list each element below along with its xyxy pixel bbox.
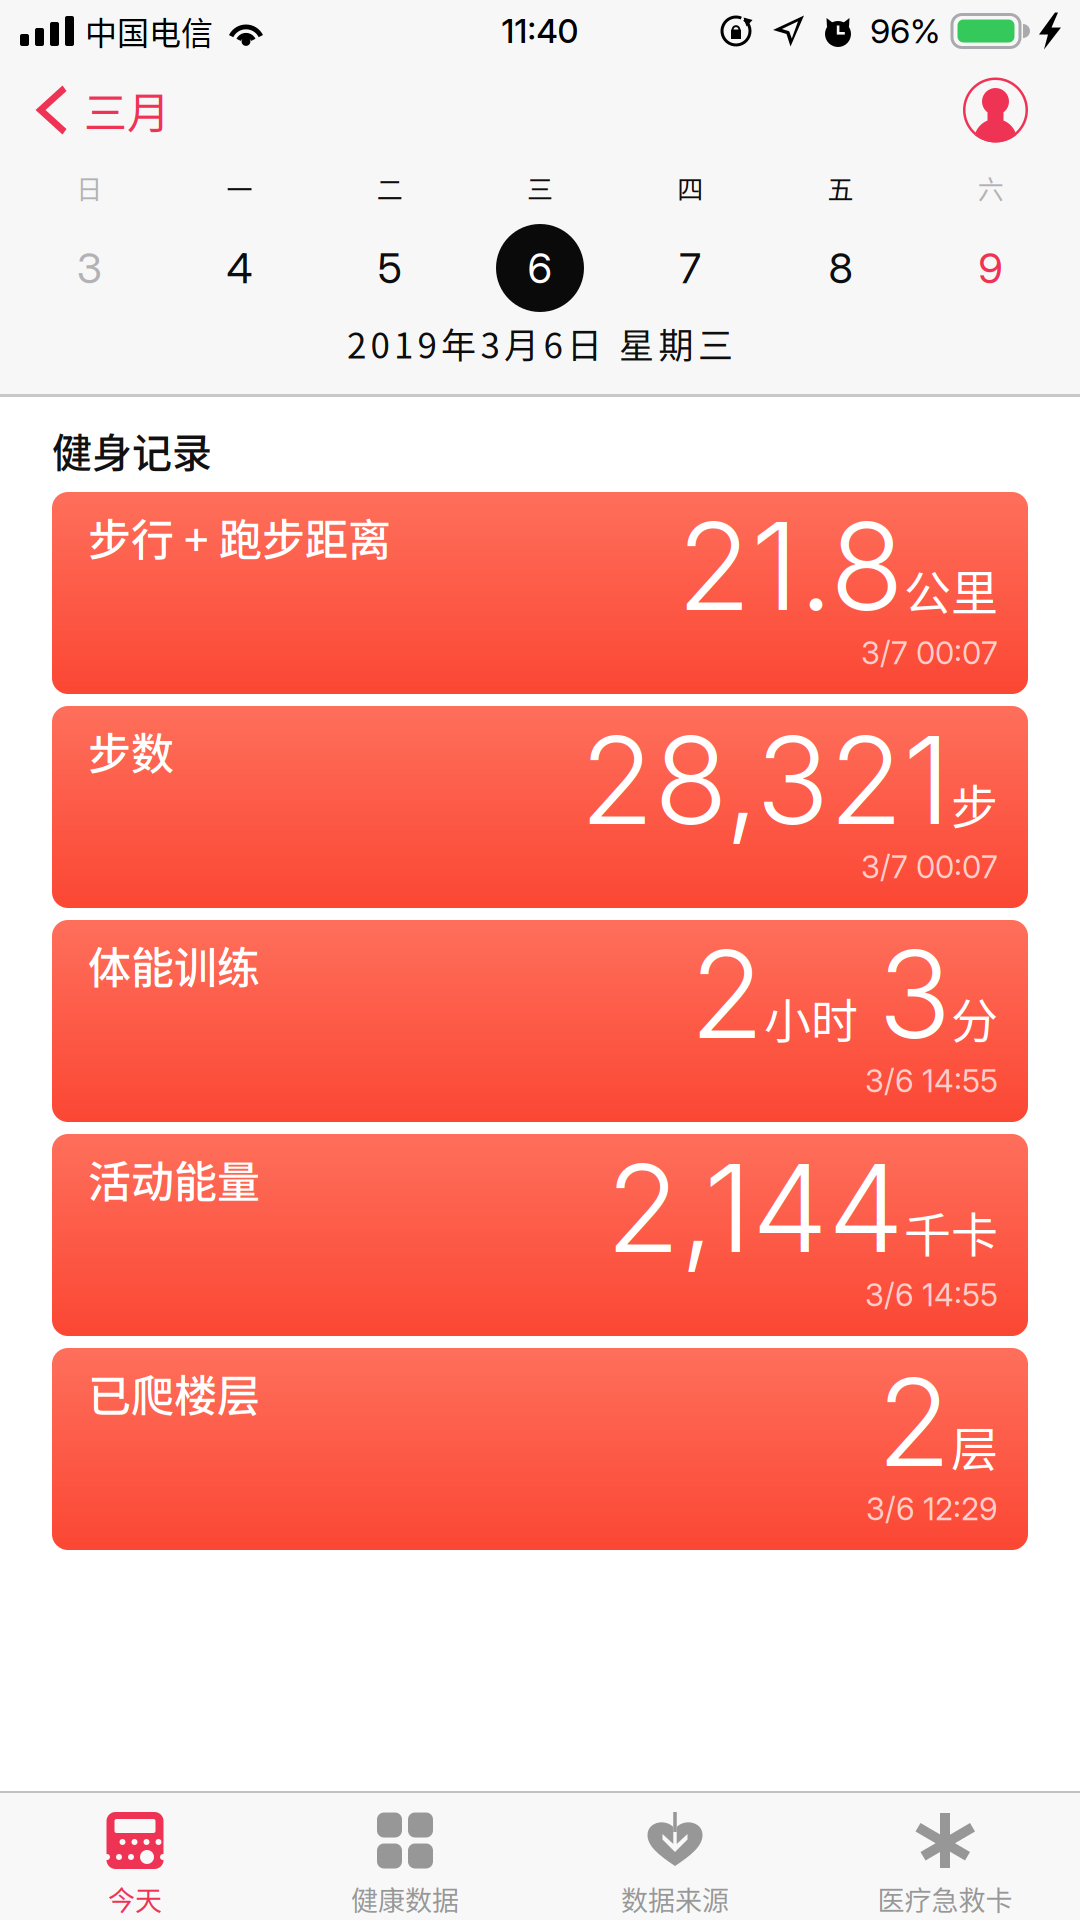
button[interactable]: 已爬楼层 — [52, 1348, 1028, 1550]
staticText: 步 — [951, 769, 998, 838]
button[interactable]: 五 — [765, 158, 916, 318]
staticText: 六 — [978, 169, 1004, 207]
staticText: 日 — [76, 169, 102, 207]
staticText: 2 — [690, 921, 764, 1067]
staticText: 公里 — [904, 555, 998, 624]
button[interactable]: 数据来源 — [540, 1793, 810, 1920]
staticText: 今天 — [108, 1879, 162, 1919]
staticText: 小时 — [764, 983, 858, 1052]
staticText: 四 — [677, 169, 703, 207]
staticText: 3/7 00:07 — [861, 848, 998, 886]
staticText: 步行 + 跑步距离 — [88, 506, 391, 568]
staticText: 体能训练 — [88, 934, 260, 996]
button[interactable]: 一 — [164, 158, 315, 318]
button[interactable]: 个人资料 — [937, 62, 1080, 158]
staticText: 健康数据 — [351, 1879, 459, 1919]
staticText: 3/6 12:29 — [866, 1490, 998, 1528]
button[interactable]: 日 — [14, 158, 164, 318]
staticText: 21.8 — [677, 493, 904, 639]
button[interactable]: 步数 — [52, 706, 1028, 908]
staticText: 分 — [951, 983, 998, 1052]
staticText: 三 — [527, 169, 553, 207]
staticText: 2,144 — [606, 1135, 904, 1281]
staticText: 数据来源 — [621, 1879, 729, 1919]
button[interactable]: 体能训练 — [52, 920, 1028, 1122]
staticText: 健身记录 — [52, 421, 212, 479]
staticText: 96% — [870, 10, 940, 51]
button[interactable]: 活动能量 — [52, 1134, 1028, 1336]
button[interactable]: 步行 + 跑步距离 — [52, 492, 1028, 694]
button[interactable]: 四 — [615, 158, 765, 318]
staticText: 5 — [378, 243, 402, 293]
staticText: 已爬楼层 — [88, 1362, 260, 1424]
staticText: 28,321 — [580, 707, 951, 853]
staticText: 中国电信 — [85, 8, 213, 54]
staticText: 8 — [829, 243, 853, 293]
staticText: 9 — [978, 243, 1003, 293]
staticText: 2019年3月6日 星期三 — [347, 318, 733, 369]
staticText: 千卡 — [904, 1197, 998, 1266]
staticText: 层 — [951, 1411, 998, 1480]
staticText: 三月 — [84, 79, 170, 141]
staticText: 二 — [377, 169, 403, 207]
staticText: 3/6 14:55 — [865, 1062, 998, 1100]
staticText: 一 — [226, 169, 252, 207]
staticText: 步数 — [88, 720, 174, 782]
button[interactable]: 六 — [916, 158, 1066, 318]
button[interactable]: 今天 — [0, 1793, 270, 1920]
staticText: 6 — [527, 243, 552, 293]
button[interactable]: 健康数据 — [270, 1793, 540, 1920]
button[interactable]: 三 — [465, 158, 615, 318]
staticText: 五 — [828, 169, 854, 207]
staticText: 4 — [226, 243, 252, 293]
staticText: 3 — [878, 921, 951, 1067]
staticText: 7 — [679, 243, 701, 293]
button[interactable]: 三月 — [0, 62, 196, 158]
button[interactable]: 医疗急救卡 — [810, 1793, 1080, 1920]
staticText: 3/6 14:55 — [865, 1276, 998, 1314]
staticText: 3 — [77, 243, 102, 293]
staticText: 11:40 — [501, 11, 578, 51]
staticText: 活动能量 — [88, 1148, 260, 1210]
button[interactable]: 二 — [315, 158, 465, 318]
staticText: 2 — [877, 1349, 951, 1495]
staticText: 医疗急救卡 — [877, 1879, 1012, 1919]
staticText: 3/7 00:07 — [861, 634, 998, 672]
